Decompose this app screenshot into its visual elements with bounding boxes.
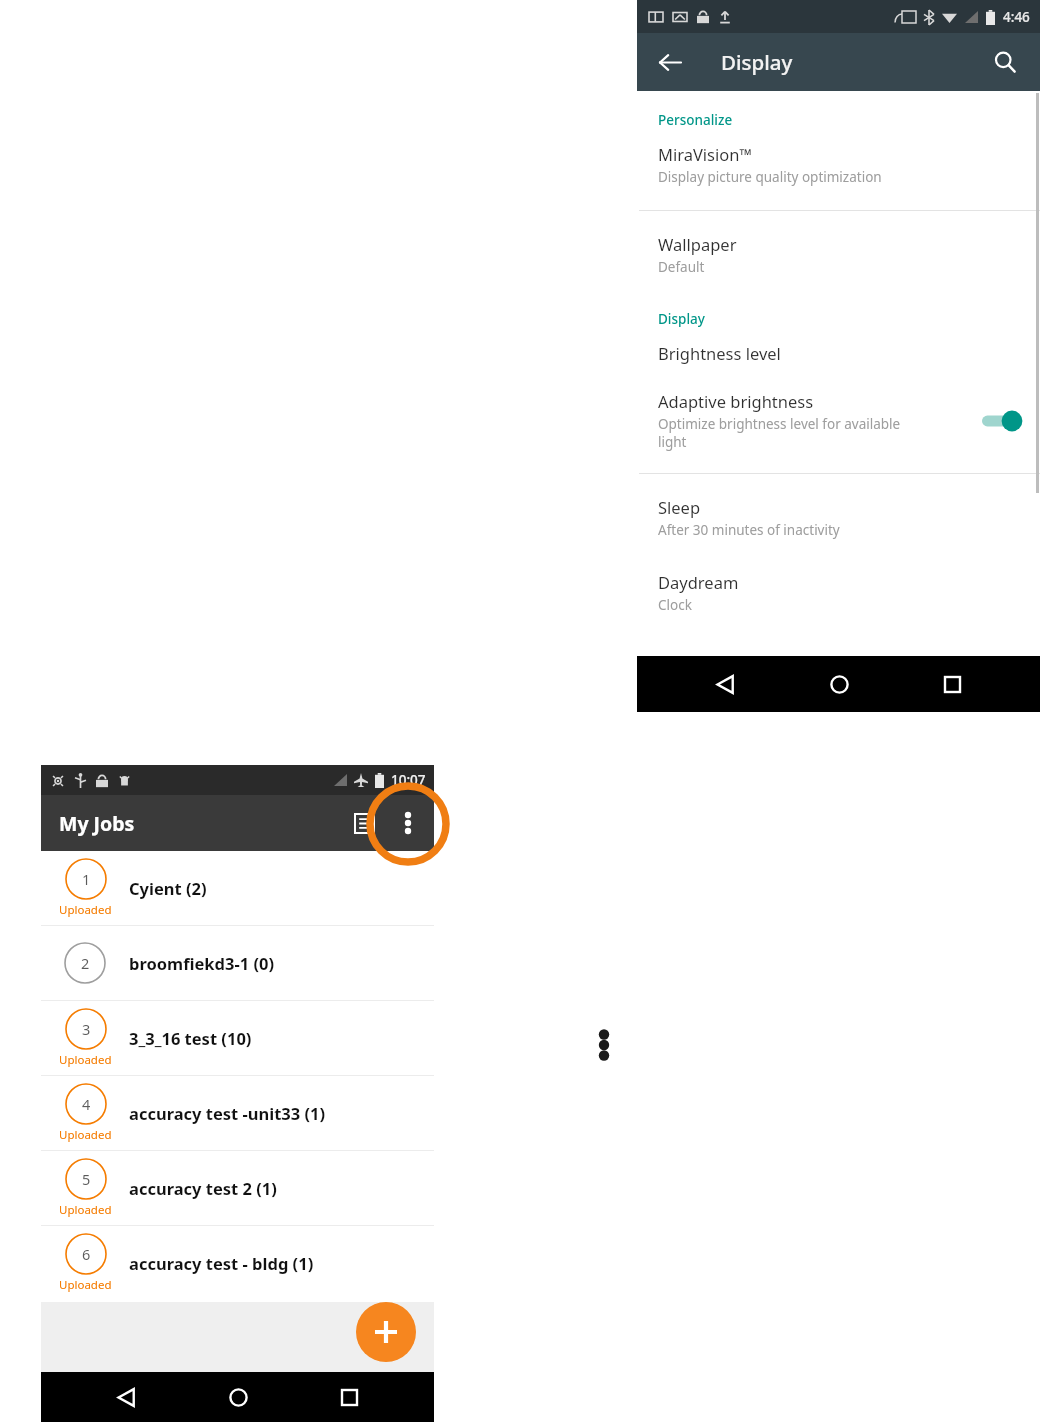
staticText: Uploaded [59,902,112,918]
button[interactable]: Adaptive brightness toggle [980,408,1026,434]
button[interactable]: Back [699,658,751,710]
staticText: accuracy test 2 (1) [129,1177,277,1199]
button[interactable]: More options [386,801,430,845]
staticText: Display [721,48,793,76]
staticText: 1 [82,869,91,889]
staticText: accuracy test -unit33 (1) [129,1102,326,1124]
staticText: light [658,433,687,451]
button[interactable]: List view [342,801,386,845]
staticText: 6 [82,1244,91,1264]
button[interactable]: Recents [323,1372,375,1422]
staticText: Adaptive brightness [658,390,814,412]
button[interactable]: 6 [41,1226,434,1300]
staticText: Sleep [658,496,701,518]
staticText: Uploaded [59,1127,112,1143]
button[interactable]: MiraVision™ [637,137,1040,194]
button[interactable]: Home [212,1372,264,1422]
button[interactable]: Daydream [637,565,1040,622]
button[interactable]: Back [100,1372,152,1422]
staticText: After 30 minutes of inactivity [658,521,840,539]
staticText: Display picture quality optimization [658,168,882,186]
button[interactable]: 1 [41,851,434,925]
button[interactable]: Adaptive brightness [637,386,1040,457]
staticText: broomfiekd3-1 (0) [129,952,275,974]
staticText: Optimize brightness level for available [658,415,901,433]
staticText: 4 [82,1094,91,1114]
button[interactable]: Sleep [637,490,1040,547]
button[interactable]: 4 [41,1076,434,1150]
staticText: Display [658,310,705,328]
staticText: Clock [658,596,692,614]
staticText: Uploaded [59,1277,112,1293]
staticText: 3 [82,1019,91,1039]
button[interactable]: Add job [356,1302,416,1362]
button[interactable]: Recents [926,658,978,710]
staticText: Daydream [658,571,739,593]
staticText: Personalize [658,111,733,129]
staticText: 10:07 [391,771,426,789]
staticText: Uploaded [59,1052,112,1068]
staticText: 3_3_16 test (10) [129,1027,252,1049]
button[interactable]: Brightness level [637,336,1040,372]
button[interactable]: More options [586,1022,622,1068]
staticText: My Jobs [59,810,135,837]
staticText: 2 [81,953,90,973]
staticText: accuracy test - bldg (1) [129,1252,314,1274]
button[interactable]: Home [813,658,865,710]
button[interactable]: Search [982,39,1028,85]
staticText: MiraVision™ [658,143,753,165]
staticText: Default [658,258,705,276]
button[interactable]: 3 [41,1001,434,1075]
button[interactable]: Navigate up [647,39,693,85]
button[interactable]: 5 [41,1151,434,1225]
staticText: 5 [82,1169,91,1189]
button[interactable]: 2 [41,926,434,1000]
staticText: Wallpaper [658,233,737,255]
staticText: Brightness level [658,342,781,364]
staticText: Uploaded [59,1202,112,1218]
button[interactable]: Wallpaper [637,227,1040,284]
staticText: 4:46 [1003,8,1030,26]
staticText: Cyient (2) [129,877,207,899]
